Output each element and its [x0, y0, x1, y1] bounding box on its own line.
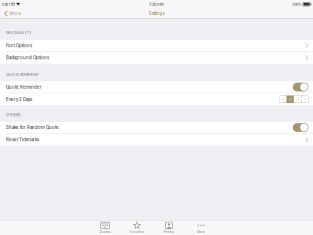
staticText: OTHERS	[6, 112, 20, 117]
button[interactable]: 1	[279, 96, 286, 103]
button[interactable]: Toggle	[293, 83, 308, 91]
staticText: 7	[304, 97, 306, 101]
staticText: 7:30 AM	[149, 2, 163, 7]
button[interactable]: Quotes	[89, 222, 121, 235]
button[interactable]: 3	[294, 96, 301, 103]
button[interactable]: More	[185, 222, 217, 235]
staticText: 1	[282, 97, 283, 101]
staticText: Photos	[163, 229, 174, 234]
staticText: 3	[297, 97, 299, 101]
staticText: READABILITY	[6, 31, 32, 35]
staticText: QUOTE REMINDER	[6, 72, 38, 77]
button[interactable]: Every 2 Days	[0, 93, 313, 105]
staticText: Settings	[148, 11, 164, 16]
staticText: More	[197, 229, 205, 234]
button[interactable]: Photos	[153, 222, 185, 235]
staticText: Quotes	[99, 229, 111, 234]
button[interactable]: Background Options	[0, 52, 313, 64]
staticText: 2	[289, 97, 291, 101]
staticText: Background Options	[6, 55, 49, 60]
button[interactable]: Reset Tickmarks	[0, 134, 313, 146]
staticText: Reset Tickmarks	[6, 137, 39, 142]
button[interactable]: Shake for Random Quote	[0, 122, 313, 134]
button[interactable]: 7	[302, 96, 308, 103]
button[interactable]: Toggle	[293, 123, 308, 132]
staticText: Every 2 Days	[6, 97, 32, 102]
staticText: 100%	[292, 2, 302, 7]
staticText: Favorites	[129, 229, 144, 234]
button[interactable]: Favorites	[121, 222, 153, 235]
staticText: Carrier	[2, 2, 15, 7]
button[interactable]: More	[0, 9, 21, 18]
staticText: Shake for Random Quote	[6, 125, 59, 130]
button[interactable]: Quote Reminder	[0, 81, 313, 93]
staticText: Font Options	[6, 43, 32, 48]
button[interactable]: 2	[287, 96, 294, 103]
staticText: Quote Reminder	[6, 84, 42, 90]
staticText: More	[9, 11, 21, 16]
button[interactable]: Font Options	[0, 40, 313, 52]
